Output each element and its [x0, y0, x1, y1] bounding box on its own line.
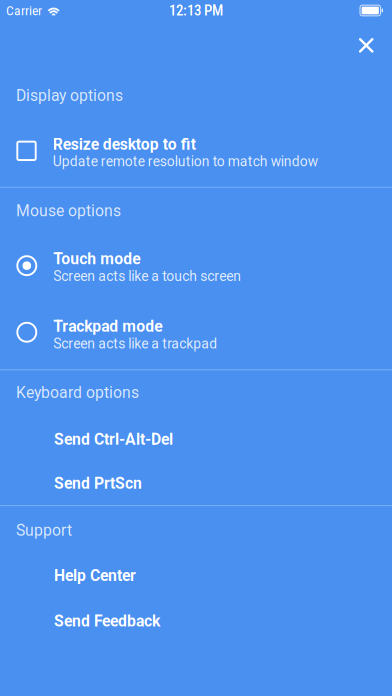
staticText: Send PrtScn — [54, 474, 142, 492]
staticText: Update remote resolution to match window — [53, 153, 318, 170]
staticText: Send Feedback — [54, 612, 160, 630]
staticText: 12:13 PM — [169, 2, 223, 19]
staticText: Trackpad mode — [53, 317, 162, 336]
staticText: Touch mode — [53, 250, 140, 268]
staticText: Help Center — [54, 566, 136, 585]
staticText: Carrier — [6, 2, 42, 18]
staticText: Display options — [16, 86, 123, 105]
button[interactable]: Send Feedback — [0, 612, 392, 630]
button[interactable]: Resize desktop to fit — [0, 135, 392, 170]
button[interactable]: Help Center — [0, 566, 392, 585]
button[interactable]: Send PrtScn — [0, 474, 392, 492]
staticText: Keyboard options — [16, 383, 139, 402]
staticText: Support — [16, 521, 72, 539]
staticText: Mouse options — [16, 202, 121, 220]
button[interactable]: Send Ctrl-Alt-Del — [0, 430, 392, 449]
staticText: Resize desktop to fit — [53, 135, 196, 153]
staticText: Send Ctrl-Alt-Del — [54, 430, 173, 449]
staticText: Screen acts like a touch screen — [53, 268, 241, 284]
staticText: Screen acts like a trackpad — [53, 336, 217, 352]
button[interactable]: Touch mode — [0, 250, 392, 284]
button[interactable]: Close — [344, 23, 388, 67]
button[interactable]: Trackpad mode — [0, 317, 392, 352]
